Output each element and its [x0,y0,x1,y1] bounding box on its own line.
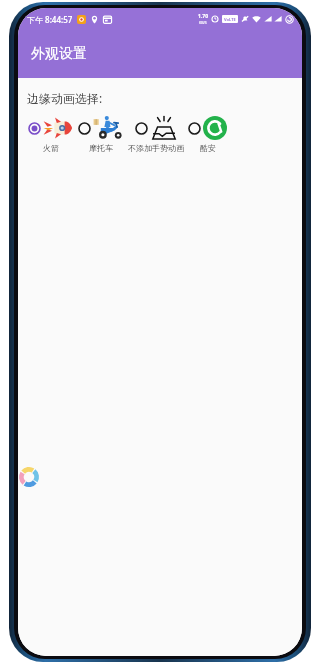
staticText: 边缘动画选择: [27,90,103,106]
staticText: 不添加手势动画 [128,143,184,153]
staticText: 下午 8:44:57 [27,14,73,25]
button[interactable]: 火箭 [28,115,73,153]
button[interactable]: 摩托车 [78,115,123,153]
staticText: 摩托车 [89,143,113,153]
staticText: VoLTE [224,17,236,22]
button[interactable]: 不添加手势动画 [128,115,184,153]
staticText: KB/S [199,20,207,25]
staticText: 外观设置 [31,45,87,63]
staticText: 火箭 [43,143,59,153]
button[interactable]: 酷安 [188,115,227,153]
staticText: 酷安 [200,143,216,153]
staticText: 1.70 [198,13,208,20]
